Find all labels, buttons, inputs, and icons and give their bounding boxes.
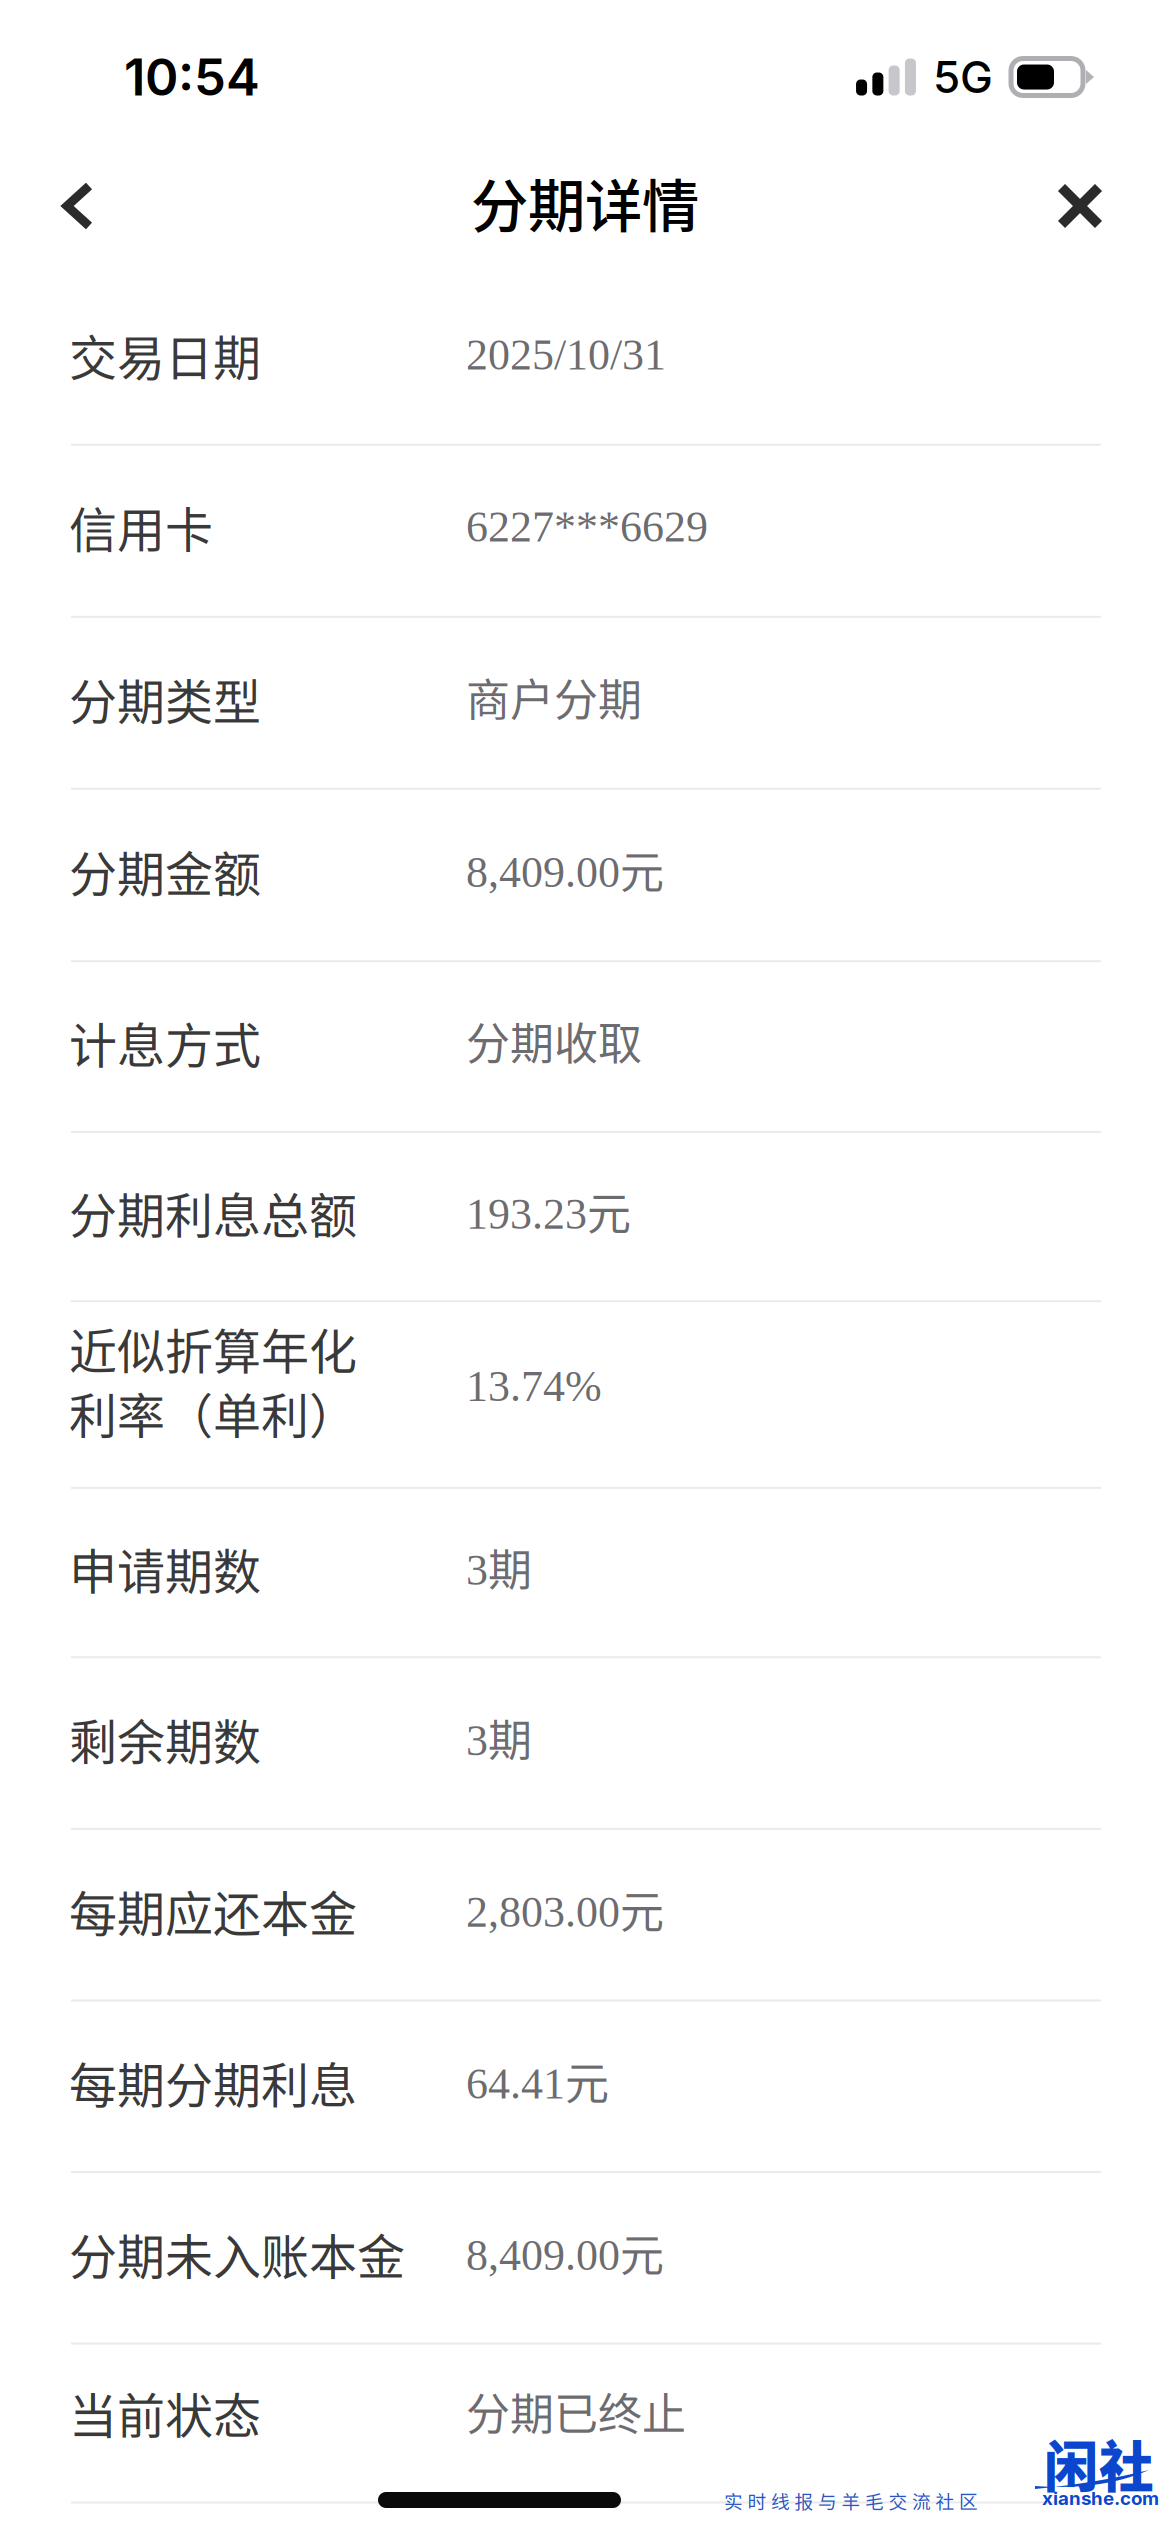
staticText: 信用卡 [69,492,213,561]
staticText: xianshe.com [1042,2487,1159,2510]
staticText: 分期类型 [69,664,261,733]
staticText: 13.74% [466,1362,602,1410]
staticText: 计息方式 [69,1008,261,1077]
staticText: 交易日期 [69,320,261,389]
staticText: 8,409.00元 [466,2220,664,2284]
button[interactable]: 交易日期 [0,272,1170,444]
button[interactable]: 计息方式 [0,960,1170,1131]
button[interactable]: 申请期数 [0,1487,1170,1656]
staticText: 剩余期数 [69,1704,261,1774]
staticText: 近似折算年化 [69,1314,357,1383]
button[interactable]: 关闭 [1027,151,1133,261]
staticText: 6227***6629 [466,502,708,551]
staticText: 每期应还本金 [69,1876,357,1945]
staticText: 分期未入账本金 [69,2219,405,2288]
staticText: 2,803.00元 [466,1877,664,1941]
button[interactable]: 分期金额 [0,788,1170,960]
staticText: 8,409.00元 [466,837,664,901]
button[interactable]: 信用卡 [0,444,1170,616]
staticText: 分期详情 [471,160,699,243]
button[interactable]: 每期应还本金 [0,1828,1170,1999]
staticText: 申请期数 [69,1534,261,1603]
staticText: 5G [933,50,993,104]
staticText: 10:54 [124,46,260,108]
button[interactable]: 分期未入账本金 [0,2171,1170,2343]
button[interactable]: 每期分期利息 [0,1999,1170,2171]
staticText: 3期 [466,1706,532,1769]
button[interactable]: 剩余期数 [0,1656,1170,1828]
staticText: 闲社 [1044,2423,1154,2502]
staticText: 分期金额 [69,836,261,905]
staticText: 当前状态 [69,2378,261,2447]
button[interactable]: 当前状态 [0,2343,1170,2489]
button[interactable]: 返回 [25,151,131,261]
button[interactable]: 近似折算年化 [0,1300,1170,1487]
staticText: 分期收取 [466,1009,642,1073]
staticText: 分期利息总额 [69,1178,357,1247]
staticText: 实时线报与羊毛交流社区 [724,2487,978,2514]
staticText: 每期分期利息 [69,2047,357,2117]
staticText: 2025/10/31 [466,330,666,379]
staticText: 利率（单利） [69,1378,357,1447]
staticText: 分期已终止 [466,2379,686,2443]
button[interactable]: 分期利息总额 [0,1131,1170,1300]
button[interactable]: 分期类型 [0,616,1170,788]
staticText: 193.23元 [466,1179,631,1243]
staticText: 商户分期 [466,665,642,729]
staticText: 64.41元 [466,2049,609,2112]
staticText: 3期 [466,1535,532,1599]
